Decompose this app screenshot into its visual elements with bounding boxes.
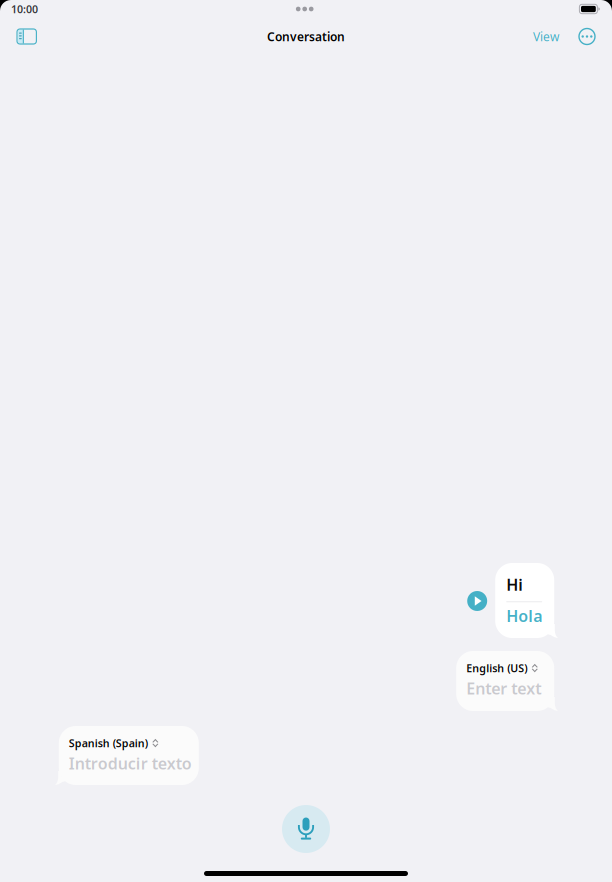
- staticText: Hi: [506, 574, 523, 595]
- staticText: Introducir texto: [69, 753, 192, 774]
- staticText: Spanish (Spain): [69, 736, 148, 750]
- button[interactable]: English (US): [456, 651, 558, 711]
- staticText: 10:00: [11, 2, 38, 16]
- staticText: Enter text: [466, 678, 541, 699]
- button[interactable]: Play translation: [467, 591, 487, 611]
- button[interactable]: More options: [572, 19, 602, 53]
- button[interactable]: View: [526, 20, 566, 52]
- button[interactable]: Start recording: [282, 805, 330, 853]
- staticText: English (US): [466, 661, 527, 675]
- staticText: Hola: [506, 605, 542, 626]
- staticText: View: [533, 28, 559, 44]
- button[interactable]: Show Sidebar: [10, 20, 43, 53]
- staticText: Conversation: [267, 28, 345, 44]
- button[interactable]: Spanish (Spain): [55, 726, 199, 785]
